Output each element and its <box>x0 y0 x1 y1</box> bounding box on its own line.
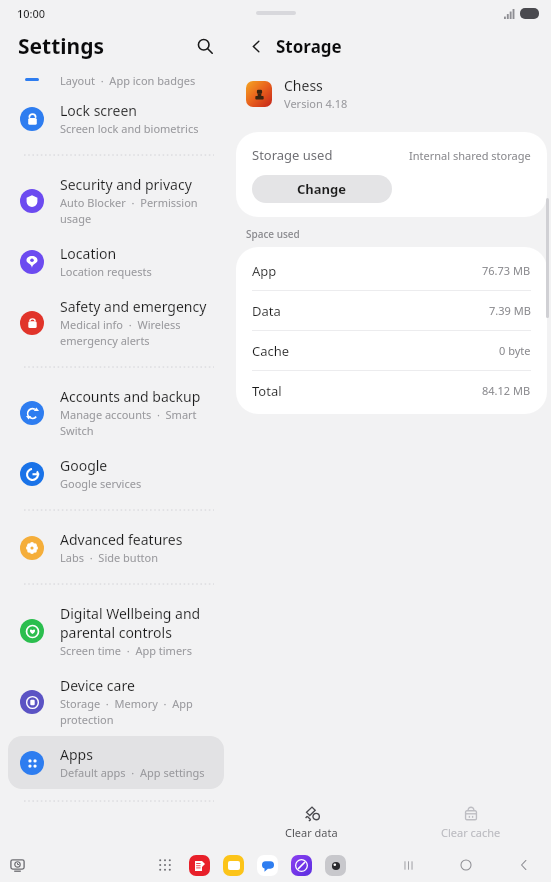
staticText: Manage accounts · Smart Switch <box>60 407 197 438</box>
staticText: Digital Wellbeing and parental controls <box>60 604 201 642</box>
staticText: Chess <box>284 76 323 95</box>
staticText: Security and privacy <box>60 175 192 194</box>
staticText: Advanced features <box>60 530 183 549</box>
staticText: Lock screen <box>60 101 138 120</box>
button[interactable]: App <box>236 251 547 291</box>
staticText: Location <box>60 244 117 263</box>
button[interactable] <box>324 854 346 876</box>
button[interactable]: Digital Wellbeing and parental controls <box>8 595 224 667</box>
button[interactable] <box>222 854 244 876</box>
staticText: Data <box>252 302 281 320</box>
staticText: Screen lock and biometrics <box>60 121 199 136</box>
staticText: Storage used <box>252 146 333 164</box>
button[interactable]: Safety and emergency <box>8 288 224 357</box>
button[interactable]: Device care <box>8 667 224 736</box>
other: All apps <box>157 857 173 873</box>
staticText: Accounts and backup <box>60 387 201 406</box>
button[interactable]: Lock screen <box>8 92 224 145</box>
button[interactable]: Chess <box>246 76 551 111</box>
button[interactable]: Advanced features <box>8 521 224 574</box>
staticText: Version 4.18 <box>284 96 348 111</box>
button[interactable]: Total <box>236 371 547 410</box>
button[interactable]: Security and privacy <box>8 166 224 235</box>
staticText: Space used <box>246 227 300 241</box>
button[interactable]: Change <box>252 175 392 203</box>
staticText: Cache <box>252 342 290 360</box>
button[interactable]: Clear cache <box>391 796 551 848</box>
button[interactable]: Back <box>242 32 270 60</box>
staticText: Google services <box>60 476 142 491</box>
staticText: 0 byte <box>499 343 531 358</box>
button[interactable]: Location <box>8 235 224 288</box>
button[interactable]: Data <box>236 291 547 331</box>
staticText: 10:00 <box>17 6 46 21</box>
staticText: Storage · Memory · App protection <box>60 696 193 727</box>
button[interactable]: Search <box>192 33 218 59</box>
staticText: Medical info · Wireless emergency alerts <box>60 317 181 348</box>
staticText: Clear data <box>285 825 338 840</box>
staticText: Safety and emergency <box>60 297 207 316</box>
staticText: Settings <box>18 32 105 61</box>
button[interactable]: Apps <box>8 736 224 789</box>
button[interactable] <box>256 854 278 876</box>
button[interactable]: All apps <box>154 854 176 876</box>
button[interactable] <box>188 854 210 876</box>
button[interactable] <box>290 854 312 876</box>
button[interactable]: Back <box>513 854 535 876</box>
button[interactable]: Home <box>455 854 477 876</box>
button[interactable]: Accounts and backup <box>8 378 224 447</box>
staticText: Apps <box>60 745 93 764</box>
staticText: 7.39 MB <box>489 303 531 318</box>
staticText: Internal shared storage <box>409 148 531 163</box>
staticText: Storage <box>276 35 342 58</box>
button[interactable]: Recents <box>397 854 419 876</box>
staticText: 76.73 MB <box>482 263 531 278</box>
staticText: 84.12 MB <box>482 383 531 398</box>
staticText: Auto Blocker · Permission usage <box>60 195 198 226</box>
staticText: Total <box>252 382 282 400</box>
button[interactable]: Cache <box>236 331 547 371</box>
staticText: Labs · Side button <box>60 550 159 565</box>
button[interactable]: Clear data <box>232 796 391 848</box>
staticText: Change <box>297 180 347 198</box>
button[interactable]: Google <box>8 447 224 500</box>
staticText: Clear cache <box>441 825 501 840</box>
staticText: Location requests <box>60 264 152 279</box>
staticText: Default apps · App settings <box>60 765 205 780</box>
staticText: Layout · App icon badges <box>60 73 196 88</box>
staticText: Device care <box>60 676 135 695</box>
staticText: Google <box>60 456 108 475</box>
button[interactable]: Recent app <box>6 854 28 876</box>
staticText: Screen time · App timers <box>60 643 192 658</box>
staticText: App <box>252 262 277 280</box>
